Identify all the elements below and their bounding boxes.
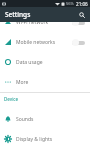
button[interactable]: Mobile networks [0,32,90,52]
staticText: Mobile networks [16,39,56,46]
staticText: Settings [5,10,31,19]
button[interactable]: Display & lights [0,129,90,149]
staticText: Wi‑Fi network [16,19,49,26]
button[interactable]: More [0,72,90,92]
button[interactable]: Data usage [0,52,90,72]
button[interactable]: Wi‑Fi network [0,12,90,32]
button[interactable]: Search [75,8,88,21]
staticText: Sounds [16,116,34,123]
staticText: 21:06 [76,1,88,7]
staticText: 56% [66,1,74,6]
staticText: More [16,79,29,86]
staticText: Device [4,96,19,102]
button[interactable]: Sounds [0,109,90,129]
staticText: Display & lights [16,136,53,143]
staticText: Data usage [16,59,43,66]
